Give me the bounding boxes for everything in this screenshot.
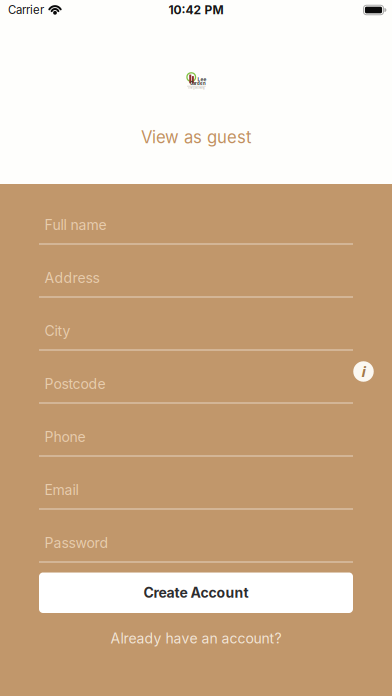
staticText: fine gardening <box>188 86 205 89</box>
staticText: City <box>44 323 70 339</box>
staticText: Carrier <box>8 3 44 17</box>
button[interactable]: Already have an account? <box>100 626 291 651</box>
staticText: Create Account <box>143 584 248 601</box>
staticText: Already have an account? <box>110 630 281 647</box>
button[interactable]: Phone <box>39 403 353 456</box>
staticText: Password <box>44 535 108 551</box>
staticText: Phone <box>44 429 85 445</box>
staticText: View as guest <box>141 127 251 147</box>
button[interactable]: View as guest <box>129 122 263 152</box>
button[interactable]: Postcode <box>39 350 353 403</box>
staticText: Address <box>44 270 99 286</box>
staticText: Lee <box>198 77 207 82</box>
staticText: i <box>361 361 365 381</box>
button[interactable]: More information <box>353 361 374 382</box>
staticText: Full name <box>44 217 106 233</box>
button[interactable]: Full name <box>39 191 353 244</box>
staticText: Email <box>44 482 78 498</box>
staticText: Postcode <box>44 376 105 392</box>
staticText: 10:42 PM <box>168 3 223 17</box>
staticText: Garden <box>190 81 206 86</box>
button[interactable]: Address <box>39 244 353 297</box>
button[interactable]: Email <box>39 456 353 509</box>
button[interactable]: Password <box>39 509 353 562</box>
button[interactable]: Create Account <box>39 572 353 613</box>
button[interactable]: City <box>39 297 353 350</box>
